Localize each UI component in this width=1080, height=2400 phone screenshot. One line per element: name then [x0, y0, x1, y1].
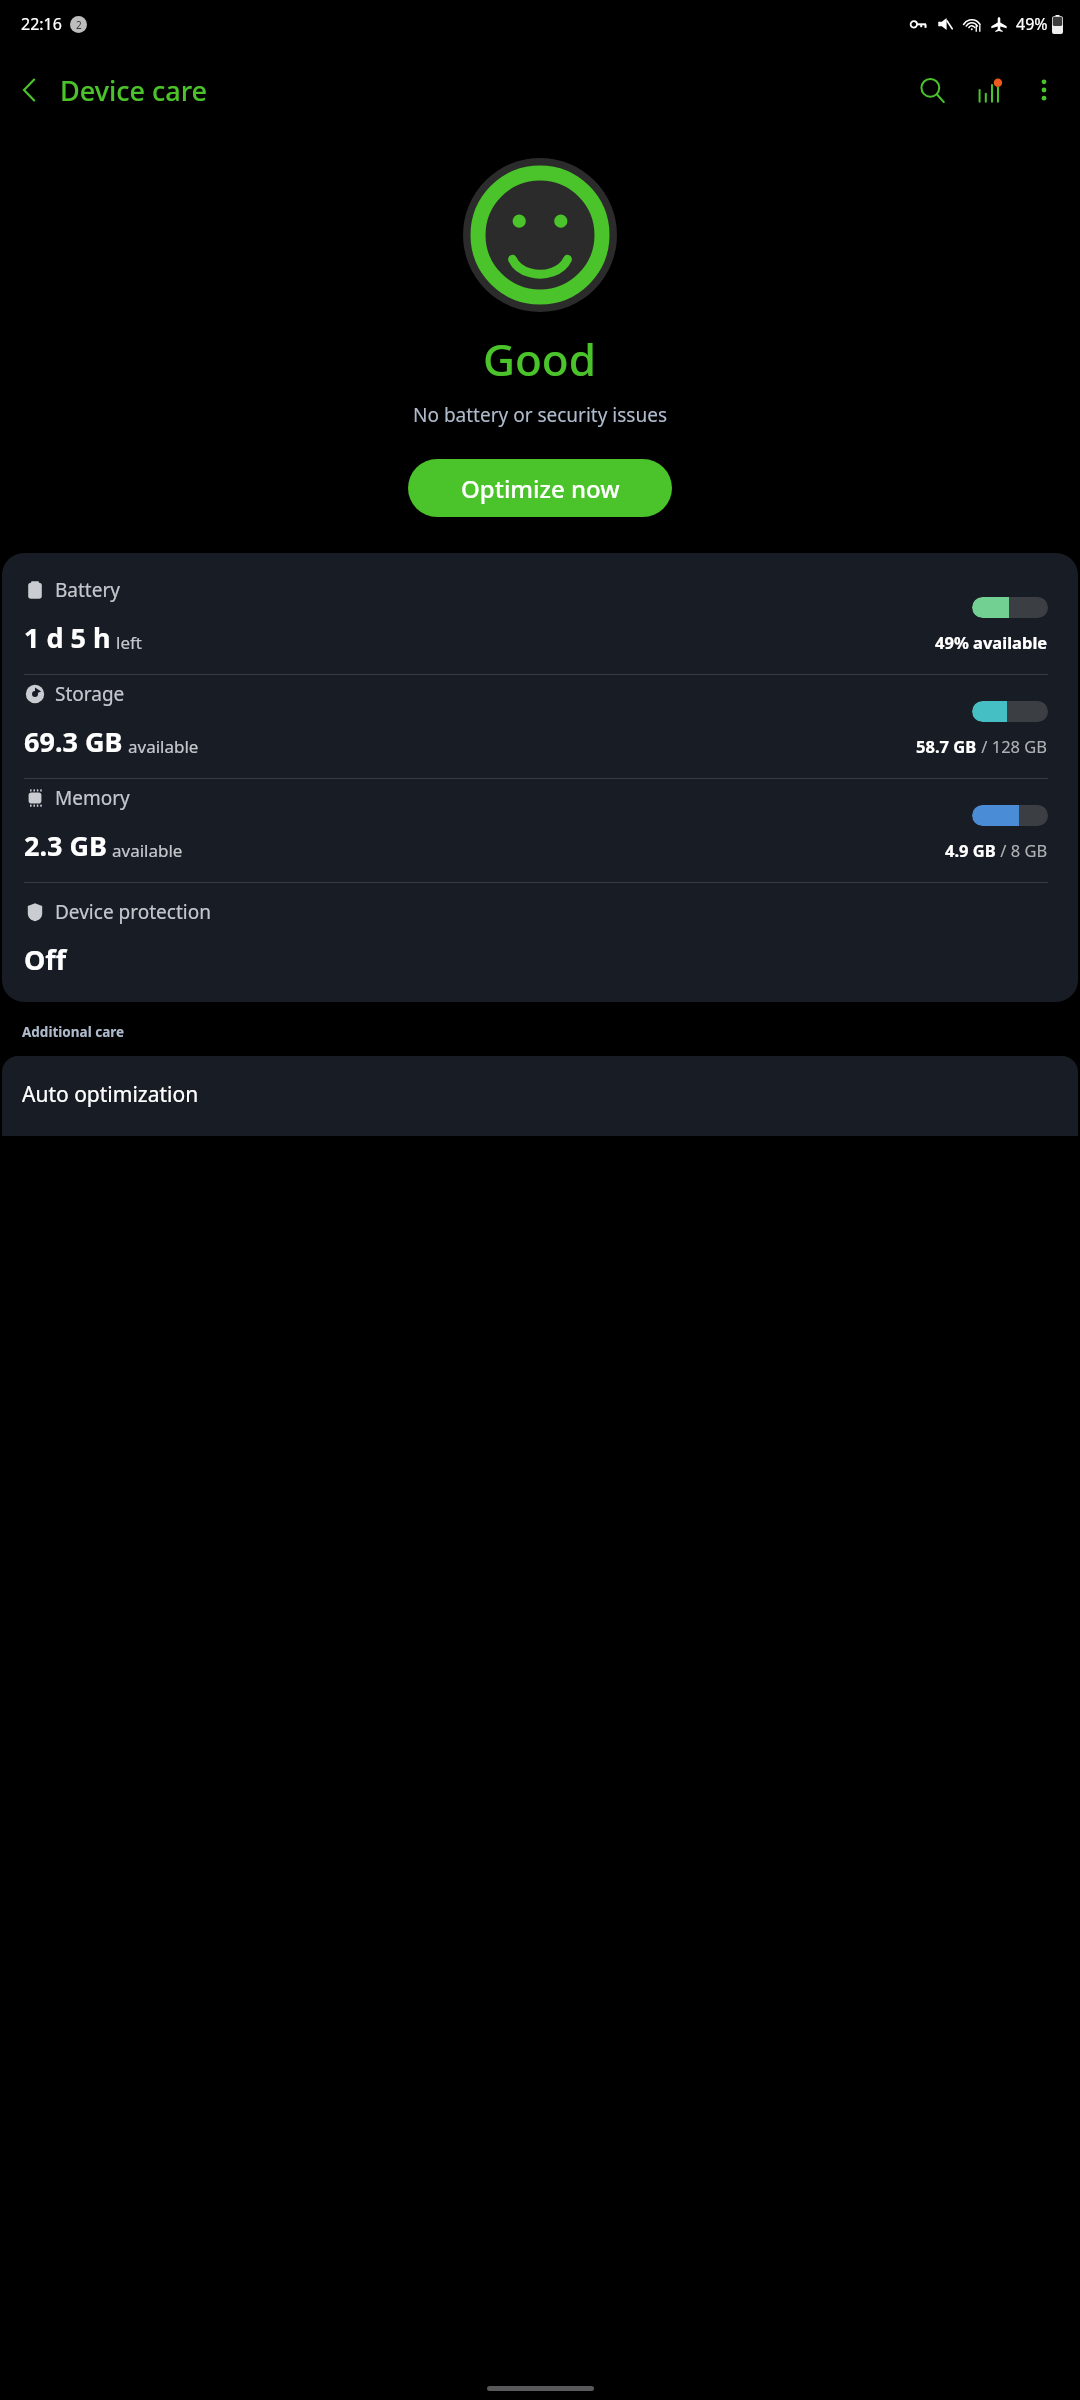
staticText: Memory: [55, 785, 130, 811]
button[interactable]: Optimize now: [408, 459, 672, 517]
staticText: Auto optimization: [22, 1080, 199, 1109]
staticText: Device care: [60, 72, 208, 109]
staticText: 49%: [1016, 13, 1048, 35]
staticText: available: [128, 735, 199, 758]
staticText: 2.3 GB: [24, 827, 107, 864]
button[interactable]: Search: [904, 62, 960, 118]
staticText: Off: [24, 941, 67, 978]
staticText: / 128 GB: [977, 735, 1048, 757]
button[interactable]: Diagnostics: [960, 62, 1016, 118]
staticText: Storage: [55, 681, 125, 707]
button[interactable]: Auto optimization: [2, 1056, 1078, 1136]
staticText: Good: [483, 329, 597, 389]
button[interactable]: Battery: [2, 571, 1078, 674]
staticText: 49% available: [935, 631, 1048, 653]
button[interactable]: Device protection: [2, 883, 1078, 998]
staticText: Battery: [55, 577, 120, 603]
staticText: 58.7 GB: [916, 735, 977, 757]
button[interactable]: Back: [0, 60, 60, 120]
staticText: Device protection: [55, 899, 211, 925]
staticText: left: [116, 631, 142, 654]
staticText: Optimize now: [461, 472, 620, 505]
button[interactable]: More options: [1016, 62, 1072, 118]
staticText: 69.3 GB: [24, 723, 123, 760]
staticText: No battery or security issues: [413, 402, 667, 428]
staticText: 2: [76, 18, 82, 32]
button[interactable]: Memory: [2, 779, 1078, 882]
staticText: / 8 GB: [996, 839, 1048, 861]
staticText: 4.9 GB: [945, 839, 996, 861]
staticText: 1 d 5 h: [24, 619, 111, 656]
staticText: Additional care: [22, 1023, 125, 1041]
staticText: 22:16: [21, 13, 62, 35]
button[interactable]: Storage: [2, 675, 1078, 778]
staticText: available: [112, 839, 183, 862]
